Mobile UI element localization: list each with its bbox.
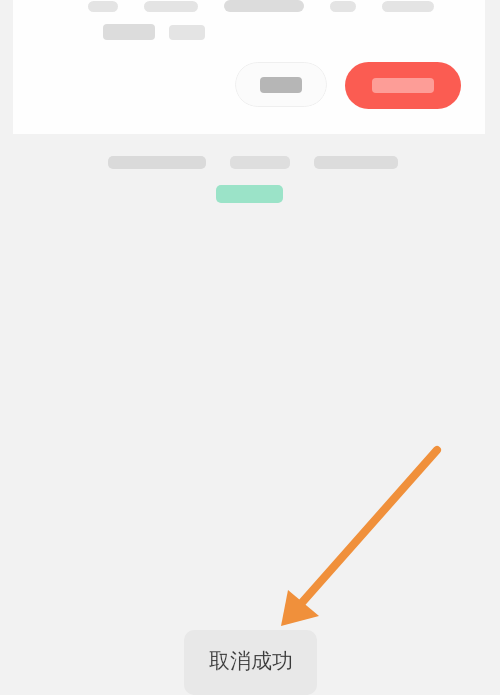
button[interactable]: [345, 62, 461, 109]
button[interactable]: [235, 62, 327, 107]
staticText: 取消成功: [209, 648, 293, 674]
